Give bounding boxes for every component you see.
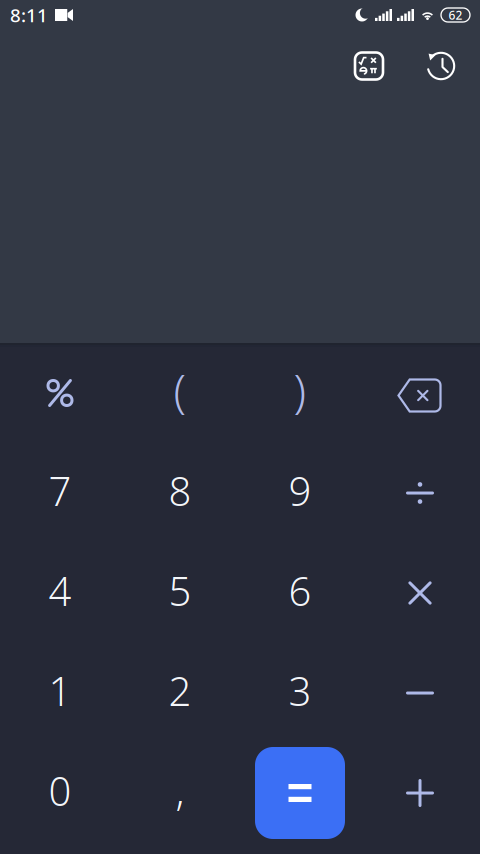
button[interactable]: 3 [240, 643, 360, 743]
staticText: 0 [48, 764, 71, 817]
button[interactable]: Delete [360, 343, 480, 443]
staticText: , [175, 764, 184, 817]
staticText: 8:11 [10, 3, 48, 27]
button[interactable]: History [415, 42, 467, 90]
button[interactable]: 0 [0, 743, 120, 843]
staticText: 2 [168, 664, 191, 717]
button[interactable]: 6 [240, 543, 360, 643]
button[interactable]: 5 [120, 543, 240, 643]
staticText: 4 [48, 564, 71, 617]
staticText: 7 [48, 464, 71, 517]
button[interactable]: 8 [120, 443, 240, 543]
staticText: 6 [288, 564, 311, 617]
button[interactable]: Plus [360, 743, 480, 843]
button[interactable]: , [120, 743, 240, 843]
button[interactable]: Equals [240, 743, 360, 843]
button[interactable]: 1 [0, 643, 120, 743]
staticText: 9 [288, 464, 311, 517]
button[interactable]: Minus [360, 643, 480, 743]
staticText: ) [293, 360, 306, 421]
button[interactable]: Divide [360, 443, 480, 543]
button[interactable]: Percent [0, 343, 120, 443]
staticText: 8 [168, 464, 191, 517]
staticText: 62 [448, 7, 462, 23]
button[interactable]: 7 [0, 443, 120, 543]
button[interactable]: 4 [0, 543, 120, 643]
button[interactable]: ) [240, 343, 360, 443]
staticText: ( [173, 360, 186, 421]
staticText: 3 [288, 664, 311, 717]
button[interactable]: Multiply [360, 543, 480, 643]
button[interactable]: 9 [240, 443, 360, 543]
staticText: 1 [48, 664, 71, 717]
button[interactable]: 2 [120, 643, 240, 743]
button[interactable]: ( [120, 343, 240, 443]
button[interactable]: Scientific mode [341, 42, 397, 90]
staticText: 5 [168, 564, 191, 617]
